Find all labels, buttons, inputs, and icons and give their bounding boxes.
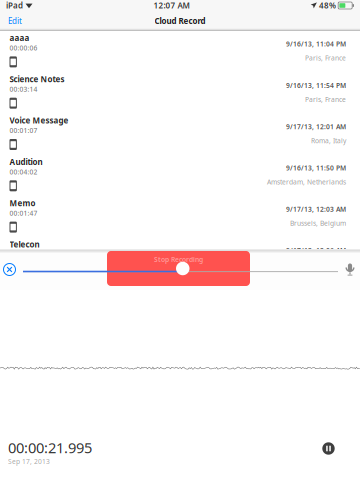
staticText: Voice Message: [9, 115, 68, 126]
staticText: 9/17/13, 12:06 AM: [286, 246, 346, 255]
staticText: Sep 17, 2013: [8, 457, 50, 466]
staticText: Brussels, Belgium: [290, 219, 346, 228]
button[interactable]: Telecon: [0, 237, 360, 279]
staticText: Edit: [8, 16, 22, 26]
staticText: 00:01:47: [9, 209, 37, 218]
button[interactable]: Stop Recording: [107, 251, 250, 286]
staticText: Science Notes: [9, 74, 64, 84]
staticText: 00:03:14: [9, 85, 37, 94]
button[interactable]: Cancel recording: [3, 263, 16, 276]
staticText: 00:01:07: [9, 126, 37, 135]
staticText: Amsterdam, Netherlands: [267, 177, 346, 186]
staticText: 9/17/13, 12:03 AM: [286, 205, 346, 214]
staticText: iPad: [6, 0, 23, 11]
staticText: Cloud Record: [154, 16, 205, 26]
staticText: 00:04:02: [9, 167, 37, 176]
button[interactable]: Science Notes: [0, 72, 360, 114]
button[interactable]: Pause: [321, 441, 336, 456]
staticText: 00:00:06: [9, 43, 37, 52]
staticText: 9/16/13, 11:50 PM: [286, 163, 346, 172]
staticText: aaaa: [9, 33, 29, 43]
button[interactable]: Audition: [0, 155, 360, 196]
staticText: Stop Recording: [154, 255, 203, 264]
button[interactable]: Edit: [6, 13, 24, 29]
staticText: 12:07 AM: [153, 0, 189, 11]
button[interactable]: Memo: [0, 196, 360, 237]
staticText: Telecon: [9, 239, 39, 250]
staticText: 9/17/13, 12:01 AM: [286, 122, 346, 131]
staticText: Paris, France: [305, 54, 346, 62]
staticText: 00:02:11: [9, 250, 37, 259]
staticText: Memo: [9, 198, 35, 208]
button[interactable]: Voice Message: [0, 114, 360, 155]
staticText: Audition: [9, 156, 42, 167]
staticText: Roma, Italy: [311, 136, 346, 145]
button[interactable]: aaaa: [0, 31, 360, 72]
staticText: 48%: [319, 0, 336, 11]
staticText: 9/16/13, 11:04 PM: [286, 40, 346, 48]
button[interactable]: Microphone: [345, 262, 355, 276]
staticText: Paris, France: [305, 95, 346, 104]
staticText: 00:00:21.995: [8, 438, 92, 457]
staticText: 9/16/13, 11:54 PM: [286, 81, 346, 90]
